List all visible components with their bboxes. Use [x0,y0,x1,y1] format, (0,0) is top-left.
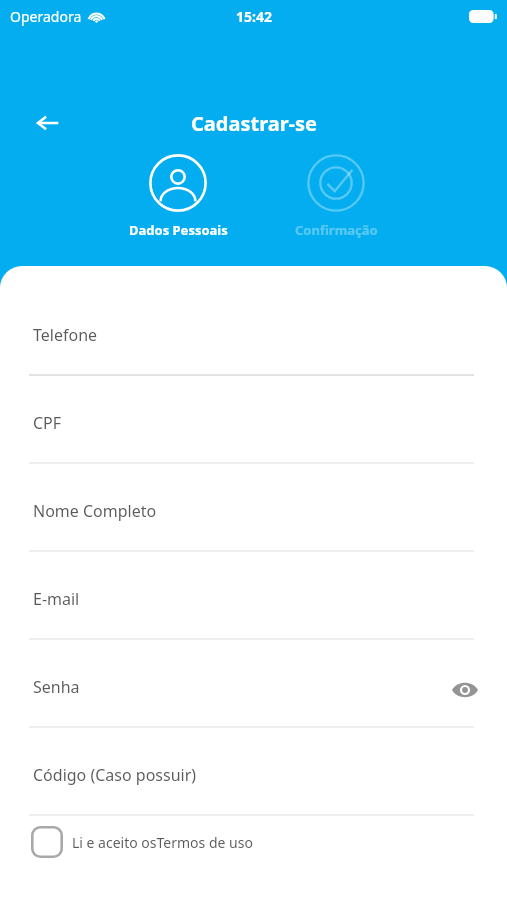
button[interactable]: Dados Pessoais [118,154,238,239]
staticText: Operadora [10,7,82,26]
staticText: Confirmação [295,221,378,239]
button[interactable]: Telefone [0,310,507,376]
staticText: Telefone [33,324,98,346]
staticText: Nome Completo [33,500,157,522]
button[interactable]: E-mail [0,574,507,640]
button[interactable]: Confirmação [276,154,396,239]
staticText: CPF [33,412,62,434]
button[interactable]: CPF [0,398,507,464]
button[interactable]: Senha [0,662,507,728]
staticText: Código (Caso possuir) [33,764,197,786]
staticText: 15:42 [236,7,272,26]
button[interactable]: Show password [445,670,485,710]
button[interactable]: Back [26,101,70,145]
button[interactable]: Nome Completo [0,486,507,552]
staticText: Dados Pessoais [129,221,228,239]
button[interactable]: Código (Caso possuir) [0,750,507,816]
staticText: Senha [33,676,80,698]
button[interactable]: Li e aceito osTermos de uso [31,812,507,872]
staticText: E-mail [33,588,80,610]
staticText: Li e aceito osTermos de uso [72,833,253,852]
staticText: Cadastrar-se [191,110,317,137]
